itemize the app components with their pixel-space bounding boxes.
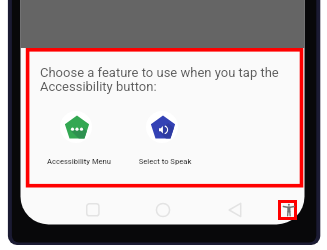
button[interactable]: Home: [152, 199, 173, 220]
button[interactable]: Accessibility: [278, 200, 297, 220]
staticText: Choose a feature to use when you tap the…: [40, 65, 279, 95]
button[interactable]: Accessibility Menu: [44, 110, 114, 168]
button[interactable]: Recent apps: [82, 199, 103, 220]
button[interactable]: Select to Speak: [130, 110, 200, 168]
staticText: Select to Speak: [130, 157, 200, 166]
staticText: Accessibility Menu: [44, 157, 114, 166]
button[interactable]: Back: [224, 199, 245, 220]
